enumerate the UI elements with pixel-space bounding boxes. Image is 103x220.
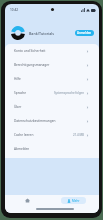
- button[interactable]: Berechtigungsmanager: [5, 58, 99, 72]
- staticText: 21.4 MB: [73, 133, 84, 137]
- staticText: Berechtigungsmanager: [14, 63, 50, 67]
- staticText: Bank/Tutorials: [29, 31, 54, 36]
- staticText: Sprache: [14, 91, 27, 95]
- staticText: Hilfe: [14, 77, 21, 81]
- button[interactable]: Datenschutzbestimmungen: [5, 114, 99, 128]
- button[interactable]: Cache leeren: [5, 128, 99, 142]
- staticText: Systemsprache folgen: [54, 91, 84, 95]
- button[interactable]: Über: [5, 100, 99, 114]
- button[interactable]: Home: [5, 196, 50, 204]
- staticText: Anmelden: [77, 31, 92, 35]
- staticText: Cache leeren: [14, 133, 34, 137]
- button[interactable]: Sprache: [5, 86, 99, 100]
- button[interactable]: Mehr: [50, 196, 96, 204]
- button[interactable]: Konto und Sicherheit: [5, 44, 99, 58]
- button[interactable]: Hilfe: [5, 72, 99, 86]
- staticText: Mehr: [72, 199, 80, 203]
- staticText: Datenschutzbestimmungen: [14, 119, 56, 123]
- staticText: Konto und Sicherheit: [14, 49, 46, 53]
- staticText: 10:42: [10, 8, 19, 12]
- button[interactable]: Anmelden: [75, 30, 94, 36]
- button[interactable]: Abmelden: [5, 142, 99, 156]
- staticText: Abmelden: [14, 147, 30, 151]
- staticText: Über: [14, 105, 22, 109]
